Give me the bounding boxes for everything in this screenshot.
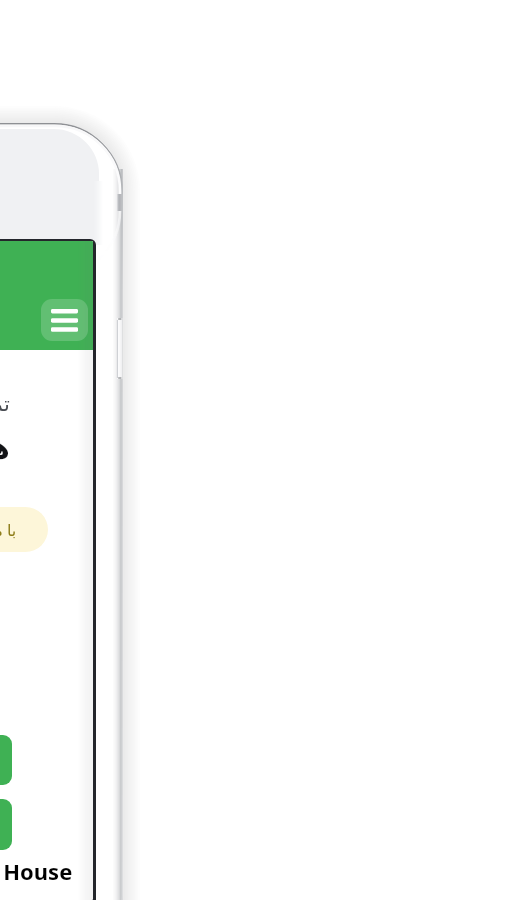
- button[interactable]: [0, 799, 12, 850]
- staticText: Clean Your House: [0, 856, 93, 886]
- button[interactable]: [0, 735, 12, 785]
- staticText: تمام خدمات خانه شما: [0, 389, 22, 418]
- staticText: با ما همراه شو: [0, 519, 17, 541]
- staticText: همه خدمات: [0, 422, 22, 468]
- button[interactable]: Open navigation menu: [41, 299, 88, 341]
- button[interactable]: با ما همراه شو: [0, 507, 48, 552]
